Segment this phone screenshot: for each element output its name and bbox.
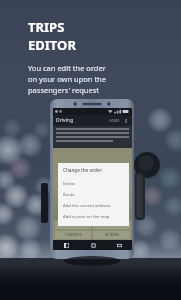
button[interactable]: Recents (106, 240, 132, 250)
staticText: HOME (109, 118, 120, 123)
staticText: Add the current address (63, 203, 111, 209)
button[interactable]: EDIT THE ORDER (93, 221, 130, 229)
button[interactable]: Extras (63, 178, 124, 189)
button[interactable]: WAITING (55, 221, 91, 229)
staticText: Extras (63, 181, 76, 187)
staticText: Add a point on the map (63, 214, 110, 220)
staticText: You can edit the order on your own upon … (28, 63, 106, 95)
button[interactable]: Add a point on the map (63, 211, 124, 222)
button[interactable]: Add the current address (63, 200, 124, 211)
staticText: WAITING (66, 223, 80, 227)
button[interactable]: ACTIONS (93, 231, 130, 239)
button[interactable]: Route (63, 189, 124, 200)
staticText: Change the order: (63, 167, 103, 173)
button[interactable]: Back (53, 240, 80, 250)
staticText: EDIT THE ORDER (99, 223, 125, 227)
staticText: EDITOR (28, 36, 76, 54)
staticText: TRIPS (28, 18, 65, 36)
staticText: COMPLETE (65, 233, 82, 237)
staticText: ACTIONS (105, 233, 119, 237)
button[interactable]: More options (123, 118, 129, 124)
button[interactable]: COMPLETE (55, 231, 91, 239)
staticText: Route (63, 192, 75, 198)
button[interactable]: Home (80, 240, 106, 250)
staticText: Driving (56, 117, 74, 124)
